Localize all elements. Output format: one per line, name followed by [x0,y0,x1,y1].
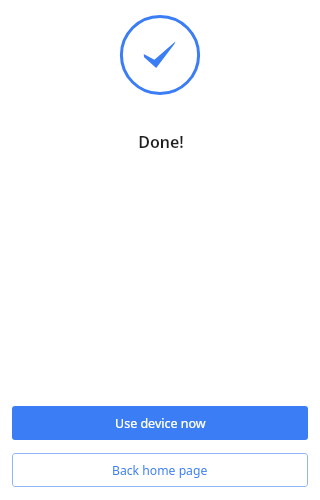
button[interactable]: Back home page [12,453,308,487]
staticText: Use device now [115,415,206,432]
button[interactable]: Use device now [12,406,308,440]
staticText: Back home page [112,462,208,479]
other: Setup complete [120,15,200,95]
staticText: Done! [138,131,184,153]
